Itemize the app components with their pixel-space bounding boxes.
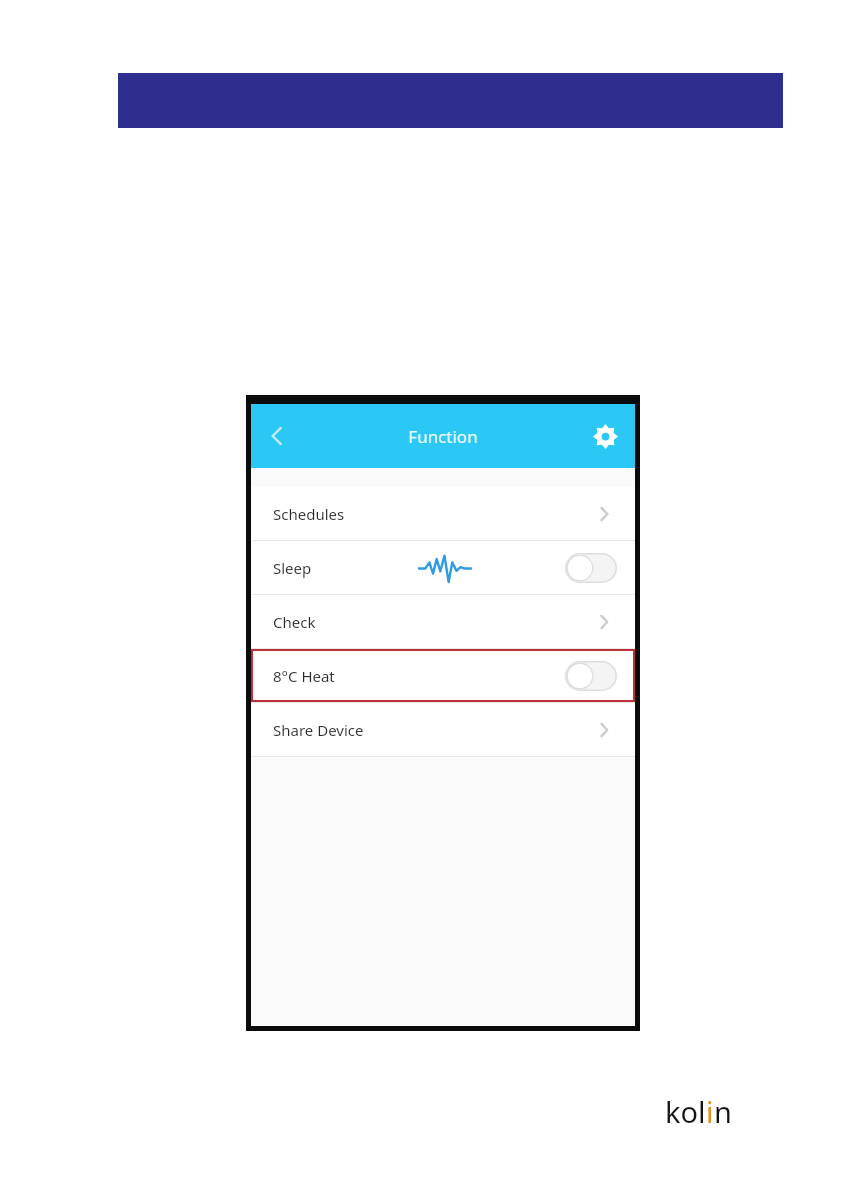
staticText: n <box>714 1092 732 1131</box>
button[interactable]: Schedules <box>251 487 635 540</box>
staticText: Check <box>273 612 316 632</box>
button[interactable]: Settings <box>585 416 625 456</box>
staticText: Schedules <box>273 504 345 524</box>
button[interactable]: Sleep <box>251 541 635 594</box>
button[interactable]: Toggle <box>565 553 617 583</box>
button[interactable]: Check <box>251 595 635 648</box>
button[interactable]: Share Device <box>251 703 635 756</box>
staticText: kol <box>665 1092 706 1131</box>
staticText: i <box>706 1092 714 1131</box>
button[interactable]: Toggle <box>565 661 617 691</box>
button[interactable]: Back <box>257 416 297 456</box>
staticText: 8°C Heat <box>273 666 335 686</box>
button[interactable]: 8°C Heat <box>251 649 635 702</box>
staticText: Function <box>408 425 478 448</box>
staticText: Sleep <box>273 558 312 578</box>
button[interactable]: kol <box>665 1092 732 1131</box>
staticText: Share Device <box>273 720 364 740</box>
